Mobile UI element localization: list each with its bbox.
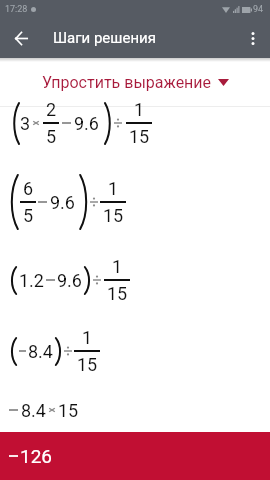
- staticText: 1: [82, 327, 93, 348]
- staticText: 8.4: [21, 400, 46, 421]
- staticText: 17:28: [5, 4, 28, 15]
- staticText: 15: [129, 126, 150, 147]
- button[interactable]: 126: [0, 432, 270, 480]
- staticText: 15: [103, 205, 124, 226]
- staticText: 1.2: [19, 270, 44, 291]
- staticText: 5: [46, 126, 57, 147]
- staticText: 9.6: [57, 270, 82, 291]
- staticText: Упростить выражение: [42, 73, 212, 92]
- staticText: 9.6: [50, 192, 75, 213]
- staticText: Шаги решения: [53, 29, 156, 47]
- staticText: 1: [108, 178, 119, 199]
- staticText: 15: [107, 283, 128, 304]
- staticText: 3: [20, 113, 31, 134]
- staticText: 94: [253, 4, 264, 15]
- staticText: 8.4: [28, 341, 53, 362]
- staticText: 1: [112, 256, 123, 277]
- staticText: 15: [77, 354, 98, 375]
- button[interactable]: Back: [5, 22, 37, 54]
- staticText: 1: [134, 99, 145, 120]
- staticText: 9.6: [74, 113, 99, 134]
- staticText: 2: [46, 99, 57, 120]
- button[interactable]: More options: [237, 22, 269, 54]
- staticText: 126: [20, 445, 53, 467]
- staticText: 15: [58, 400, 79, 421]
- staticText: 5: [23, 205, 34, 226]
- button[interactable]: Упростить выражение: [0, 58, 270, 106]
- staticText: 6: [23, 178, 34, 199]
